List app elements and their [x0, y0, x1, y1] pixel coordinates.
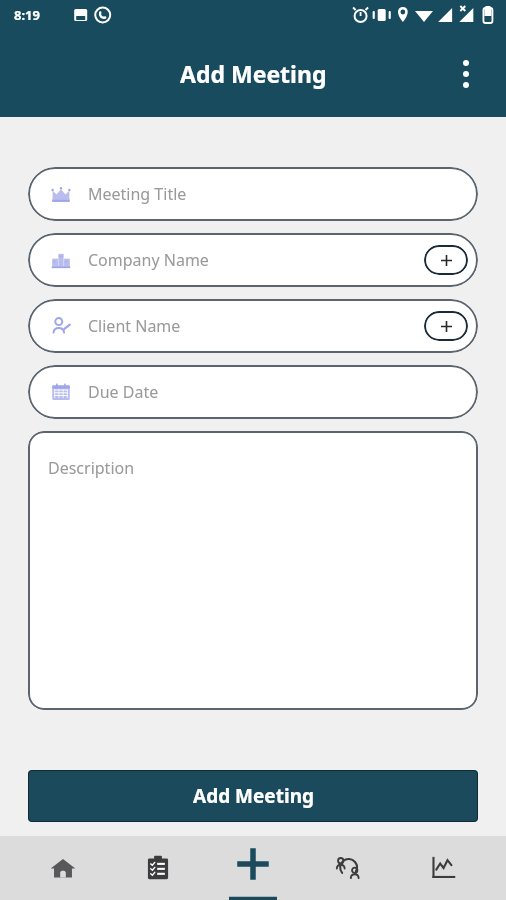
- staticText: Add Meeting: [180, 58, 327, 89]
- button[interactable]: Add Company Name: [424, 245, 468, 275]
- staticText: Description: [48, 457, 135, 479]
- staticText: Meeting Title: [88, 183, 187, 205]
- staticText: 8:19: [14, 6, 40, 24]
- button[interactable]: Home: [31, 836, 95, 900]
- button[interactable]: Add Client Name: [424, 311, 468, 341]
- staticText: Company Name: [88, 249, 209, 271]
- button[interactable]: Add Meeting: [28, 770, 478, 822]
- button[interactable]: Description: [28, 431, 478, 710]
- button[interactable]: Clients: [316, 836, 380, 900]
- button[interactable]: Add: [221, 836, 285, 900]
- button[interactable]: More options: [446, 54, 486, 94]
- staticText: Client Name: [88, 315, 181, 337]
- button[interactable]: Due Date: [28, 365, 478, 419]
- button[interactable]: Reports: [411, 836, 475, 900]
- staticText: Due Date: [88, 381, 159, 403]
- button[interactable]: Company Name: [28, 233, 478, 287]
- button[interactable]: Tasks: [126, 836, 190, 900]
- button[interactable]: Meeting Title: [28, 167, 478, 221]
- button[interactable]: Client Name: [28, 299, 478, 353]
- staticText: Add Meeting: [193, 783, 314, 809]
